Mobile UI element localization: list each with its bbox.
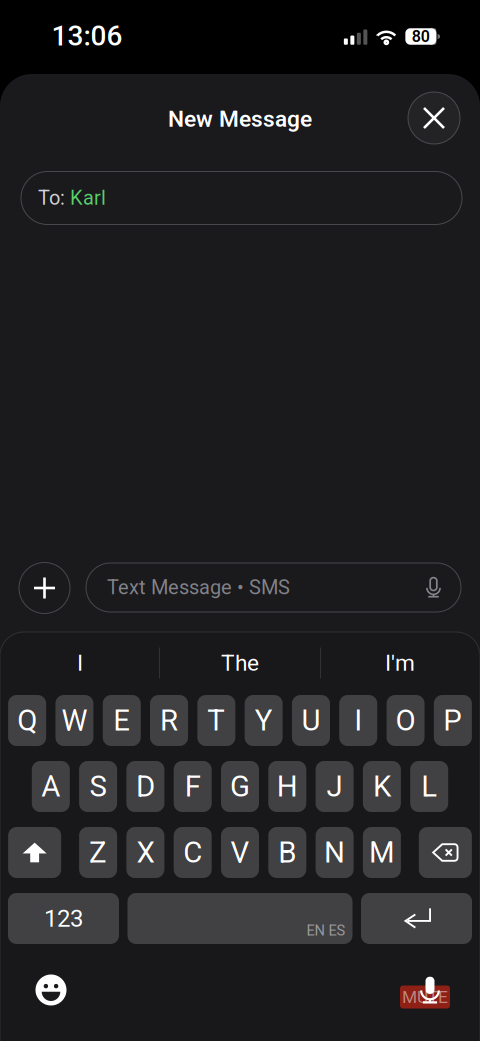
staticText: Karl bbox=[70, 186, 106, 210]
button[interactable]: B bbox=[268, 827, 306, 878]
staticText: Z bbox=[89, 835, 107, 870]
button[interactable]: X bbox=[126, 827, 164, 878]
button[interactable]: G bbox=[221, 761, 259, 812]
staticText: R bbox=[160, 703, 178, 738]
button[interactable]: Text Message • SMS bbox=[86, 563, 461, 612]
button[interactable]: Return bbox=[361, 893, 472, 944]
button[interactable]: A bbox=[32, 761, 70, 812]
button[interactable]: U bbox=[292, 695, 330, 746]
button[interactable]: Dictation bbox=[408, 968, 452, 1012]
button[interactable]: O bbox=[386, 695, 424, 746]
staticText: 80 bbox=[412, 27, 430, 46]
staticText: I bbox=[354, 703, 362, 738]
staticText: New Message bbox=[168, 106, 312, 132]
button[interactable]: The bbox=[165, 635, 315, 691]
button[interactable]: L bbox=[410, 761, 448, 812]
button[interactable]: Close bbox=[408, 92, 460, 144]
staticText: EN ES bbox=[306, 922, 345, 939]
staticText: 13:06 bbox=[51, 20, 122, 52]
button[interactable]: H bbox=[268, 761, 306, 812]
staticText: I'm bbox=[385, 650, 415, 676]
staticText: F bbox=[185, 769, 201, 804]
staticText: B bbox=[278, 835, 296, 870]
button[interactable]: C bbox=[174, 827, 212, 878]
button[interactable]: 123 bbox=[8, 893, 119, 944]
staticText: Y bbox=[255, 703, 273, 738]
button[interactable]: Shift bbox=[8, 827, 61, 878]
button[interactable]: E bbox=[103, 695, 141, 746]
staticText: A bbox=[41, 769, 60, 804]
staticText: S bbox=[90, 769, 107, 804]
staticText: V bbox=[230, 835, 249, 870]
button[interactable]: Z bbox=[79, 827, 117, 878]
staticText: The bbox=[221, 650, 259, 676]
staticText: L bbox=[421, 769, 437, 804]
button[interactable]: I bbox=[339, 695, 377, 746]
staticText: X bbox=[136, 835, 154, 870]
staticText: Q bbox=[17, 703, 37, 738]
button[interactable]: W bbox=[55, 695, 93, 746]
button[interactable]: M bbox=[363, 827, 401, 878]
staticText: MUTE bbox=[402, 987, 448, 1007]
button[interactable]: Delete bbox=[419, 827, 472, 878]
staticText: C bbox=[183, 835, 202, 870]
button[interactable]: T bbox=[197, 695, 235, 746]
button[interactable]: I'm bbox=[325, 635, 475, 691]
staticText: M bbox=[369, 835, 395, 870]
button[interactable]: N bbox=[316, 827, 354, 878]
button[interactable]: Y bbox=[245, 695, 283, 746]
button[interactable]: D bbox=[126, 761, 164, 812]
button[interactable]: R bbox=[150, 695, 188, 746]
staticText: U bbox=[301, 703, 320, 738]
staticText: D bbox=[136, 769, 155, 804]
staticText: N bbox=[324, 835, 345, 870]
button[interactable]: V bbox=[221, 827, 259, 878]
button[interactable]: I bbox=[5, 635, 155, 691]
staticText: J bbox=[327, 769, 343, 804]
staticText: G bbox=[230, 769, 250, 804]
button[interactable]: S bbox=[79, 761, 117, 812]
staticText: O bbox=[395, 703, 415, 738]
button[interactable]: K bbox=[363, 761, 401, 812]
staticText: W bbox=[61, 703, 87, 738]
staticText: 123 bbox=[44, 904, 83, 932]
staticText: P bbox=[443, 703, 462, 738]
button[interactable]: Emoji bbox=[29, 968, 73, 1012]
button[interactable]: Space bbox=[127, 893, 352, 944]
staticText: K bbox=[373, 769, 391, 804]
button[interactable]: To: bbox=[21, 171, 462, 224]
button[interactable]: J bbox=[316, 761, 354, 812]
button[interactable]: P bbox=[434, 695, 472, 746]
button[interactable]: Q bbox=[8, 695, 46, 746]
button[interactable]: Add media bbox=[19, 562, 70, 613]
staticText: H bbox=[277, 769, 298, 804]
staticText: I bbox=[77, 650, 83, 676]
staticText: Text Message • SMS bbox=[107, 576, 290, 599]
staticText: E bbox=[113, 703, 130, 738]
button[interactable]: F bbox=[174, 761, 212, 812]
staticText: T bbox=[207, 703, 225, 738]
staticText: To: bbox=[38, 186, 70, 210]
